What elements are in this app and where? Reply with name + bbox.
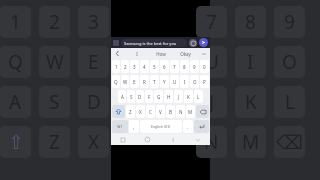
- button[interactable]: R: [140, 75, 149, 88]
- button[interactable]: G: [154, 90, 163, 103]
- staticText: 7: [206, 9, 217, 35]
- button[interactable]: T: [150, 75, 159, 88]
- button[interactable]: 7: [170, 60, 179, 73]
- staticText: Okay: [180, 51, 191, 57]
- button[interactable]: Recents: [111, 134, 135, 145]
- button[interactable]: J: [174, 90, 183, 103]
- staticText: 7: [173, 64, 176, 70]
- button[interactable]: Z: [126, 105, 135, 118]
- staticText: Q: [114, 79, 118, 85]
- staticText: I: [247, 49, 254, 75]
- button[interactable]: 6: [160, 60, 169, 73]
- staticText: C: [149, 109, 152, 115]
- button[interactable]: 8: [180, 60, 189, 73]
- staticText: X: [88, 129, 100, 155]
- button[interactable]: Send: [199, 38, 208, 47]
- button[interactable]: Home: [135, 134, 160, 145]
- button[interactable]: How: [149, 48, 173, 59]
- button[interactable]: ,: [129, 120, 139, 133]
- button[interactable]: Shift: [112, 105, 125, 118]
- button[interactable]: U: [170, 75, 179, 88]
- button[interactable]: N: [176, 105, 185, 118]
- button[interactable]: L: [194, 90, 203, 103]
- staticText: R: [143, 79, 146, 85]
- button[interactable]: Expand toolbar: [111, 48, 124, 59]
- button[interactable]: Samsung is the best for you: [121, 39, 187, 47]
- button[interactable]: B: [166, 105, 175, 118]
- staticText: E: [133, 79, 136, 85]
- button[interactable]: M: [186, 105, 195, 118]
- staticText: F: [148, 94, 151, 100]
- staticText: ⇧: [8, 131, 24, 153]
- button[interactable]: I: [124, 48, 149, 59]
- staticText: I: [136, 51, 138, 57]
- staticText: 1: [10, 9, 21, 35]
- button[interactable]: D: [136, 90, 144, 103]
- button[interactable]: V: [156, 105, 165, 118]
- button[interactable]: English (US): [140, 120, 182, 133]
- button[interactable]: More suggestions: [197, 48, 210, 59]
- staticText: I: [184, 79, 186, 85]
- button[interactable]: Attach: [113, 40, 119, 46]
- staticText: 9: [193, 64, 196, 70]
- staticText: 0: [203, 64, 206, 70]
- button[interactable]: X: [136, 105, 145, 118]
- staticText: E: [88, 49, 99, 75]
- button[interactable]: I: [180, 75, 189, 88]
- staticText: ,: [133, 124, 135, 130]
- staticText: 8: [245, 9, 256, 35]
- staticText: 4: [143, 64, 146, 70]
- button[interactable]: F: [145, 90, 153, 103]
- button[interactable]: .: [183, 120, 193, 133]
- button[interactable]: P: [200, 75, 209, 88]
- button[interactable]: Hide keyboard: [185, 134, 210, 145]
- button[interactable]: 5: [150, 60, 159, 73]
- staticText: U: [205, 49, 219, 75]
- button[interactable]: Okay: [173, 48, 197, 59]
- button[interactable]: Back: [160, 134, 185, 145]
- staticText: D: [87, 89, 101, 115]
- button[interactable]: O: [190, 75, 199, 88]
- button[interactable]: 0: [200, 60, 209, 73]
- staticText: Z: [49, 129, 60, 155]
- button[interactable]: 3: [130, 60, 139, 73]
- button[interactable]: 1: [112, 60, 120, 73]
- button[interactable]: A: [118, 90, 126, 103]
- button[interactable]: Emoji: [189, 39, 197, 47]
- staticText: .: [187, 124, 189, 130]
- staticText: Samsung is the best for you: [124, 41, 177, 46]
- staticText: T: [153, 79, 156, 85]
- button[interactable]: Q: [112, 75, 120, 88]
- staticText: J: [209, 89, 215, 115]
- staticText: N: [204, 129, 219, 155]
- staticText: 2: [49, 9, 60, 35]
- staticText: 6: [163, 64, 166, 70]
- button[interactable]: H: [164, 90, 173, 103]
- staticText: 9: [284, 9, 295, 35]
- button[interactable]: W: [121, 75, 129, 88]
- staticText: 5: [153, 64, 156, 70]
- staticText: J: [178, 94, 180, 100]
- button[interactable]: 4: [140, 60, 149, 73]
- button[interactable]: 9: [190, 60, 199, 73]
- button[interactable]: E: [130, 75, 139, 88]
- button[interactable]: Symbols: [112, 120, 128, 133]
- staticText: M: [188, 109, 193, 115]
- button[interactable]: Backspace: [196, 105, 209, 118]
- staticText: O: [193, 79, 197, 85]
- button[interactable]: Enter: [194, 120, 209, 133]
- staticText: 2: [124, 64, 127, 70]
- staticText: L: [285, 89, 295, 115]
- staticText: 3: [88, 9, 99, 35]
- button[interactable]: 2: [121, 60, 129, 73]
- staticText: N: [179, 109, 183, 115]
- staticText: How: [156, 51, 166, 57]
- button[interactable]: K: [184, 90, 193, 103]
- staticText: 8: [183, 64, 186, 70]
- staticText: Z: [129, 109, 132, 115]
- button[interactable]: Y: [160, 75, 169, 88]
- button[interactable]: S: [127, 90, 135, 103]
- button[interactable]: C: [146, 105, 155, 118]
- staticText: U: [173, 79, 177, 85]
- staticText: S: [49, 89, 60, 115]
